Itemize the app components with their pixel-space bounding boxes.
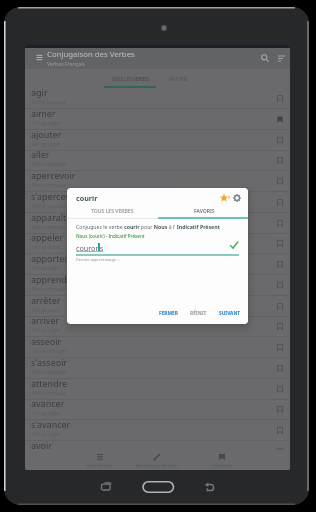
staticText: 1er groupe	[31, 264, 61, 271]
button[interactable]: aimer	[25, 109, 290, 130]
button[interactable]	[261, 54, 270, 63]
staticText: s'apercevoir	[31, 190, 82, 202]
staticText: apparaître	[31, 211, 75, 223]
button[interactable]: s'asseoir	[25, 358, 290, 379]
staticText: 1er groupe	[31, 326, 61, 333]
staticText: apercevoir	[31, 169, 76, 181]
staticText: Verbes Français	[47, 60, 86, 67]
staticText: 0	[228, 195, 231, 200]
staticText: 3ème groupe	[31, 202, 67, 209]
staticText: Conjuguez le verbe courir pour Nous à l'…	[76, 223, 220, 230]
button[interactable]	[232, 193, 242, 203]
staticText: arriver	[31, 314, 60, 326]
staticText: Choix de forme	[87, 463, 113, 468]
staticText: Conjugaison des Verbes	[47, 49, 135, 60]
button[interactable]: s'avancer	[25, 420, 290, 441]
staticText: RÉINIT	[190, 310, 207, 317]
staticText: 2ème groupe	[31, 98, 67, 105]
staticText: 3ème groupe	[31, 285, 67, 292]
staticText: avancer	[31, 397, 65, 409]
staticText: 1er groupe	[31, 140, 61, 147]
staticText: s'avancer	[31, 418, 71, 430]
button[interactable]: avoir	[25, 441, 290, 462]
button[interactable]: FERMER	[155, 306, 182, 321]
button[interactable]: apparaître	[25, 213, 290, 234]
staticText: 3ème groupe	[31, 223, 67, 230]
staticText: aimer	[31, 107, 56, 119]
button[interactable]: arriver	[25, 316, 290, 337]
button[interactable]: TOUS LES VERBES	[67, 203, 158, 220]
button[interactable]: arrêter	[25, 296, 290, 317]
staticText: agir	[31, 86, 48, 98]
button[interactable]: apporter	[25, 254, 290, 275]
staticText: 3ème groupe	[31, 368, 67, 375]
button[interactable]: apercevoir	[25, 171, 290, 192]
staticText: 3ème groupe	[31, 160, 67, 167]
staticText: avoir	[31, 439, 53, 451]
button[interactable]: asseoir	[25, 337, 290, 358]
staticText: Prépositions	[212, 463, 233, 468]
staticText: FERMER	[159, 310, 178, 317]
staticText: Nous (courir) - Indicatif Présent	[76, 233, 145, 239]
button[interactable]: appeler	[25, 233, 290, 254]
button[interactable]	[277, 54, 286, 63]
staticText: 3ème groupe	[31, 389, 67, 396]
staticText: 1er groupe	[31, 119, 61, 126]
staticText: 1er groupe	[31, 430, 61, 437]
staticText: 3ème groupe	[31, 347, 67, 354]
button[interactable]: attendre	[25, 379, 290, 400]
staticText: arrêter	[31, 294, 61, 306]
staticText: aller	[31, 148, 50, 160]
button[interactable]: SUIVANT	[215, 306, 245, 321]
staticText: ajouter	[31, 128, 62, 140]
staticText: FAVORIS	[194, 208, 215, 215]
staticText: SUIVANT	[219, 310, 241, 317]
button[interactable]: aller	[25, 150, 290, 171]
staticText: 1er groupe	[31, 409, 61, 416]
staticText: FAVORIS	[169, 76, 188, 82]
button[interactable]: ajouter	[25, 130, 290, 151]
staticText: Apprentissage d'écriture	[136, 463, 178, 468]
button[interactable]: Choix de forme	[72, 450, 128, 470]
staticText: appeler	[31, 231, 64, 243]
staticText: s'asseoir	[31, 356, 68, 368]
staticText: 1er groupe	[31, 243, 61, 250]
staticText: apprendre	[31, 273, 76, 285]
button[interactable]: TOUS LES VERBES	[104, 69, 156, 88]
staticText: apporter	[31, 252, 69, 264]
button[interactable]: RÉINIT	[186, 306, 211, 321]
button[interactable]	[219, 193, 229, 203]
staticText: Dernier apprentissage : -	[76, 257, 121, 262]
button[interactable]	[36, 54, 43, 61]
staticText: TOUS LES VERBES	[111, 76, 150, 82]
button[interactable]: FAVORIS	[159, 203, 248, 220]
staticText: 3ème groupe	[31, 181, 67, 188]
button[interactable]: apprendre	[25, 275, 290, 296]
button[interactable]: Prépositions	[194, 450, 250, 470]
staticText: 1er groupe	[31, 306, 61, 313]
button[interactable]: s'apercevoir	[25, 192, 290, 213]
button[interactable]: Apprentissage d'écriture	[124, 450, 190, 470]
staticText: TOUS LES VERBES	[91, 208, 134, 215]
staticText: courons	[76, 243, 104, 253]
staticText: courir	[76, 193, 98, 203]
staticText: asseoir	[31, 335, 62, 347]
button[interactable]: avancer	[25, 399, 290, 420]
staticText: attendre	[31, 377, 68, 389]
button[interactable]: agir	[25, 88, 290, 109]
